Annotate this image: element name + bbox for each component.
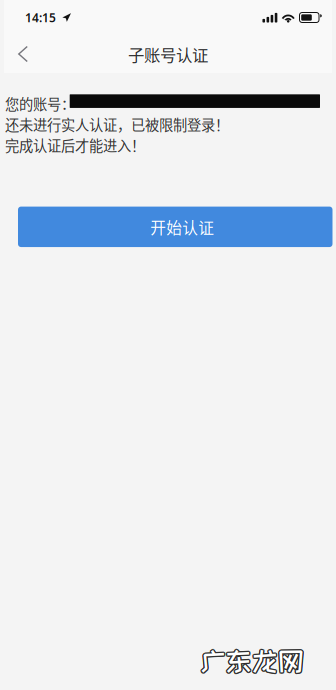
staticText: 您的账号： — [5, 93, 75, 114]
button[interactable]: 返回 — [6, 35, 40, 73]
staticText: 完成认证后才能进入！ — [5, 135, 145, 155]
staticText: 广东龙网 — [201, 646, 305, 674]
staticText: 广东龙网 — [199, 646, 303, 674]
staticText: 广东龙网 — [201, 648, 305, 676]
staticText: 广东龙网 — [200, 646, 304, 674]
staticText: 开始认证 — [150, 215, 214, 238]
button[interactable]: 开始认证 — [18, 207, 332, 247]
staticText: 广东龙网 — [200, 648, 304, 676]
staticText: 子账号认证 — [128, 42, 208, 66]
staticText: 广东龙网 — [199, 648, 303, 676]
staticText: 14:15 — [25, 9, 56, 25]
staticText: 广东龙网 — [199, 647, 303, 675]
staticText: 广东龙网 — [201, 647, 305, 675]
staticText: 还未进行实人认证，已被限制登录！ — [5, 114, 229, 135]
staticText: 广东龙网 — [200, 647, 304, 675]
